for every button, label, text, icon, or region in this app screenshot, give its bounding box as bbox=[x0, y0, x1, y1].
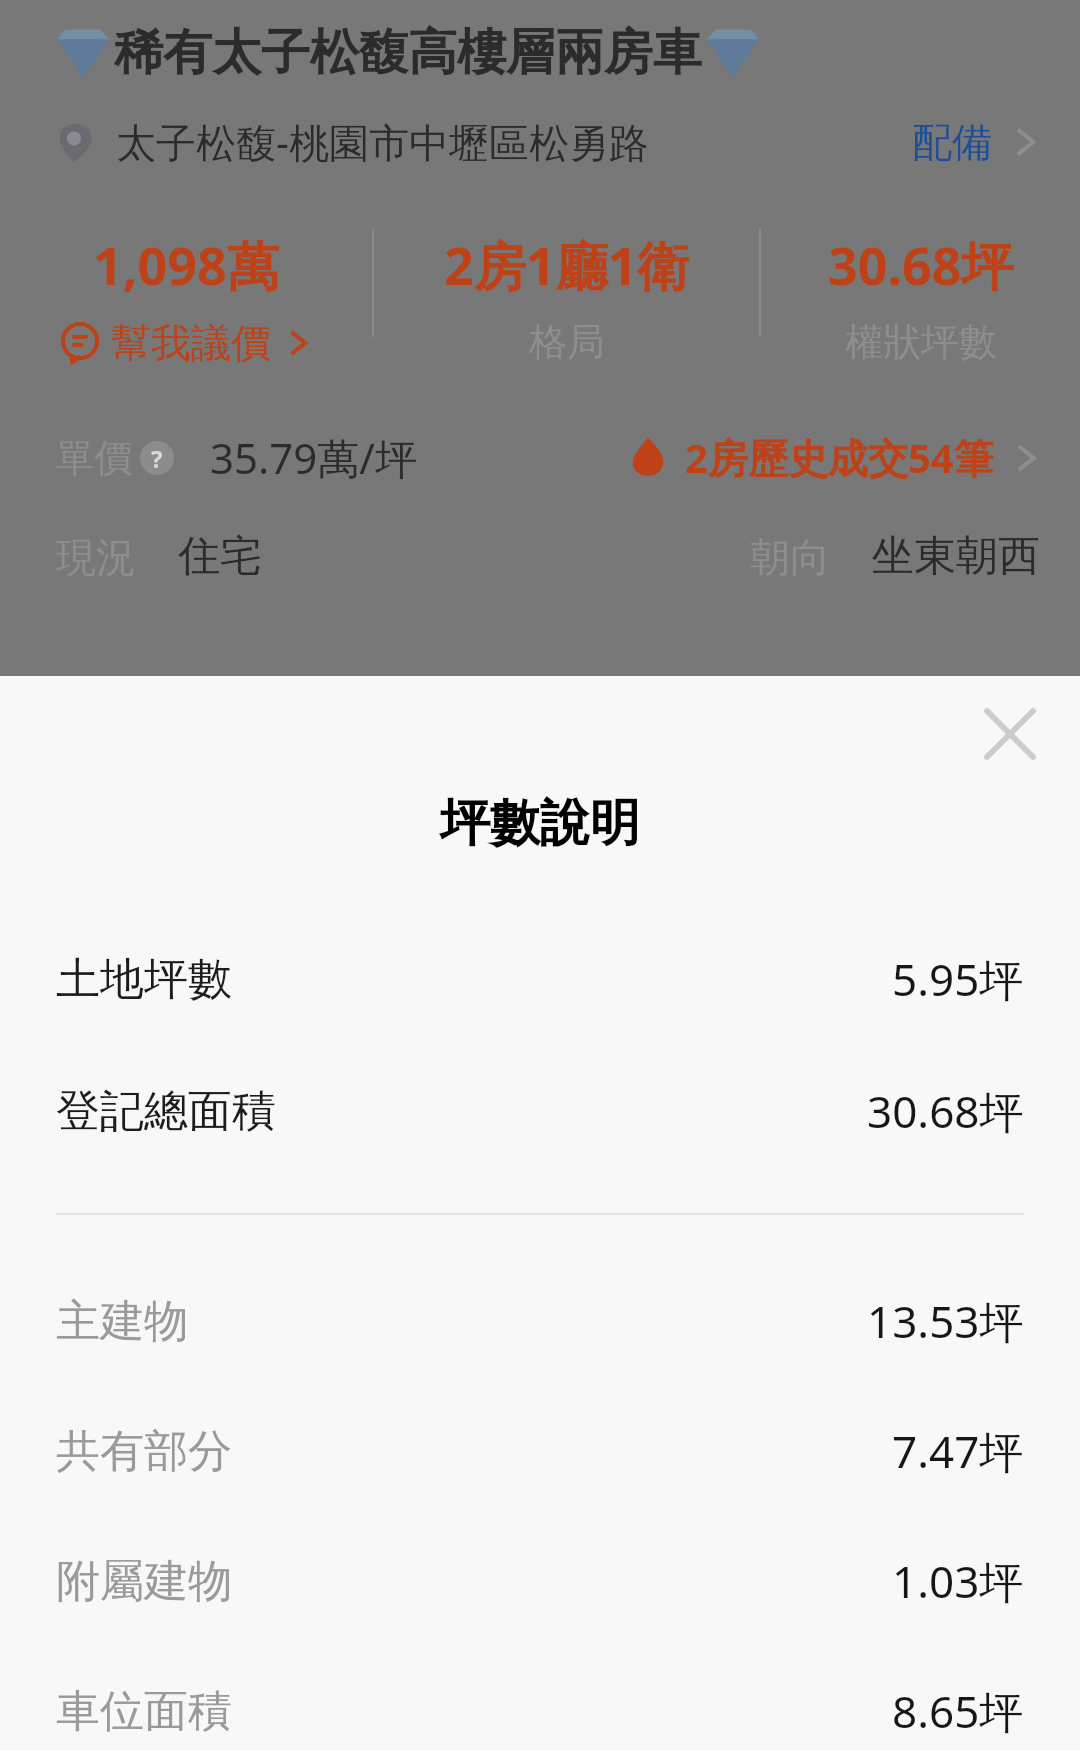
staticText: 坪數說明 bbox=[0, 792, 1080, 855]
staticText: 太子松馥-桃園市中壢區松勇路 bbox=[116, 114, 649, 169]
staticText: 30.68坪 bbox=[867, 1081, 1024, 1141]
staticText: 配備 bbox=[912, 117, 992, 167]
button[interactable]: 土地坪數 bbox=[0, 943, 1080, 1015]
staticText: 車位面積 bbox=[56, 1684, 232, 1739]
staticText: 2房1廳1衛 bbox=[444, 229, 690, 300]
button[interactable]: Close bbox=[974, 698, 1046, 770]
staticText: 1,098萬 bbox=[93, 229, 279, 300]
button[interactable]: 車位面積 bbox=[0, 1675, 1080, 1747]
button[interactable]: 幫我議價 bbox=[61, 318, 311, 368]
staticText: 權狀坪數 bbox=[845, 318, 997, 366]
staticText: 7.47坪 bbox=[892, 1421, 1024, 1481]
staticText: 格局 bbox=[529, 318, 605, 366]
staticText: 住宅 bbox=[178, 530, 262, 583]
button[interactable]: 2房歷史成交54筆 bbox=[627, 430, 1040, 485]
button[interactable]: 附屬建物 bbox=[0, 1545, 1080, 1617]
staticText: 共有部分 bbox=[56, 1424, 232, 1479]
staticText: 稀有太子松馥高樓層兩房車 bbox=[114, 22, 702, 84]
button[interactable]: 共有部分 bbox=[0, 1415, 1080, 1487]
staticText: 坐東朝西 bbox=[872, 530, 1040, 583]
staticText: 13.53坪 bbox=[867, 1291, 1024, 1351]
staticText: ? bbox=[151, 442, 163, 475]
staticText: 5.95坪 bbox=[892, 949, 1024, 1009]
staticText: 土地坪數 bbox=[56, 952, 232, 1007]
staticText: 現況 bbox=[56, 532, 136, 582]
button[interactable]: 主建物 bbox=[0, 1285, 1080, 1357]
staticText: 朝向 bbox=[750, 532, 830, 582]
staticText: 登記總面積 bbox=[56, 1084, 276, 1139]
staticText: 單價 bbox=[56, 434, 132, 482]
staticText: 幫我議價 bbox=[111, 318, 271, 368]
staticText: 附屬建物 bbox=[56, 1554, 232, 1609]
staticText: 1.03坪 bbox=[892, 1551, 1024, 1611]
staticText: 30.68坪 bbox=[828, 229, 1014, 300]
button[interactable]: 登記總面積 bbox=[0, 1075, 1080, 1147]
staticText: 35.79萬/坪 bbox=[210, 429, 417, 486]
button[interactable]: 配備 bbox=[912, 117, 1040, 167]
staticText: 主建物 bbox=[56, 1294, 188, 1349]
staticText: 8.65坪 bbox=[892, 1681, 1024, 1741]
staticText: 2房歷史成交54筆 bbox=[685, 430, 994, 485]
